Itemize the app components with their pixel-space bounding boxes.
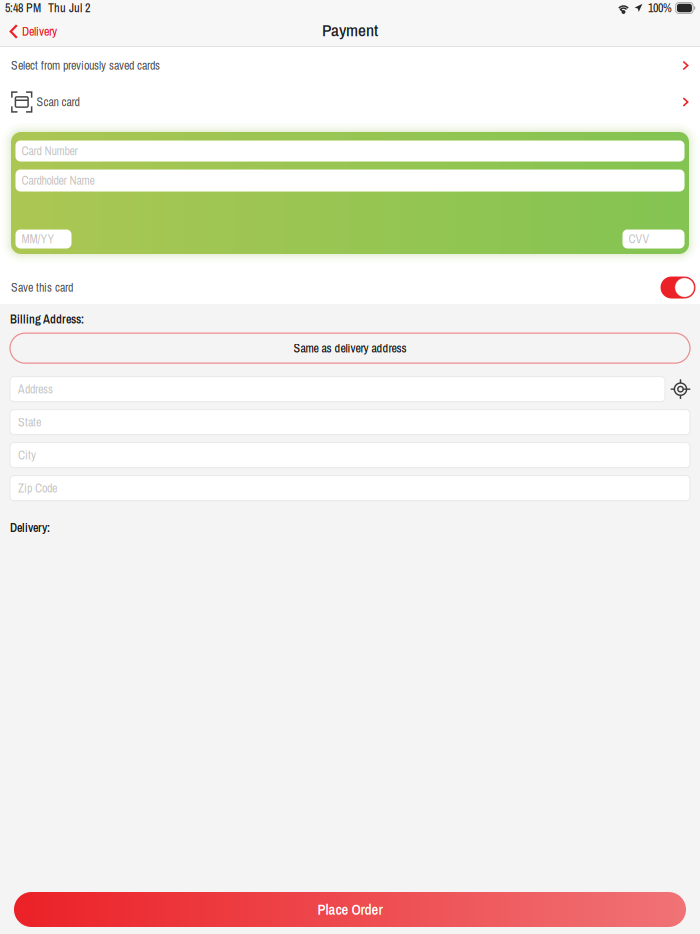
button[interactable]: Same as delivery address (10, 333, 690, 363)
staticText: Delivery: (10, 520, 50, 536)
staticText: Select from previously saved cards (11, 57, 160, 74)
button[interactable]: Delivery (0, 16, 64, 47)
staticText: CVV (628, 231, 649, 247)
button[interactable]: Save this card (660, 276, 695, 298)
button[interactable]: Use current location (670, 379, 691, 400)
staticText: Save this card (11, 279, 73, 296)
staticText: Cardholder Name (21, 172, 94, 189)
button[interactable]: Select from previously saved cards (0, 47, 700, 84)
staticText: Thu Jul 2 (48, 0, 90, 16)
button[interactable]: Place Order (14, 892, 686, 927)
staticText: Billing Address: (10, 311, 84, 327)
staticText: City (18, 447, 36, 463)
staticText: MM/YY (21, 231, 54, 247)
staticText: Place Order (317, 900, 382, 919)
staticText: 5:48 PM (5, 0, 41, 16)
staticText: 100% (648, 0, 672, 16)
staticText: Delivery (22, 23, 57, 40)
staticText: State (18, 414, 41, 430)
staticText: Scan card (36, 94, 79, 110)
staticText: Address (18, 381, 53, 397)
staticText: Same as delivery address (293, 340, 406, 356)
staticText: Zip Code (18, 480, 57, 496)
staticText: Card Number (21, 143, 77, 159)
staticText: Payment (322, 18, 378, 42)
button[interactable]: Scan card (0, 84, 700, 120)
